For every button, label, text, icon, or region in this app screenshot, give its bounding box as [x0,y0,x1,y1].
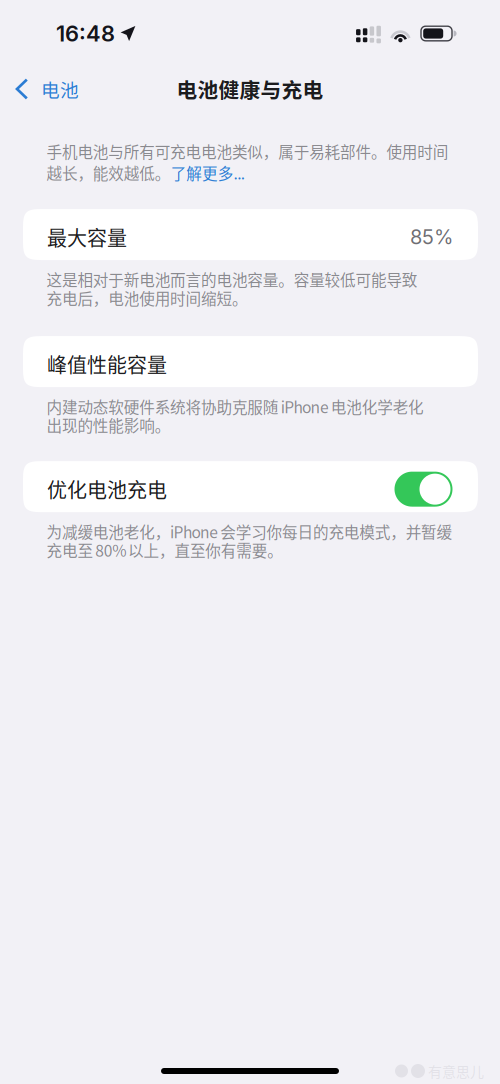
staticText: 电池 [41,75,79,102]
staticText: 最大容量 [47,223,127,252]
staticText: 手机电池与所有可充电电池类似，属于易耗部件。使用时间 [46,142,449,160]
button[interactable]: 峰值性能容量 [23,336,478,387]
button[interactable]: 电池 [0,67,91,110]
button[interactable]: 最大容量 [23,209,478,260]
staticText: 内建动态软硬件系统将协助克服随 iPhone 电池化学老化 出现的性能影响。 [46,397,424,434]
staticText: 为减缓电池老化，iPhone 会学习你每日的充电模式，并暂缓 充电至 80% 以… [46,522,453,559]
staticText: 这是相对于新电池而言的电池容量。容量较低可能导致 充电后，电池使用时间缩短。 [46,270,418,307]
button[interactable]: 了解更多... [171,163,245,182]
staticText: 16:48 [56,20,115,47]
staticText: 优化电池充电 [47,475,167,504]
staticText: 越长，能效越低。 [46,163,171,182]
staticText: 电池健康与充电 [176,74,323,104]
button[interactable]: 优化电池充电 [23,461,478,512]
staticText: 峰值性能容量 [47,350,167,379]
staticText: 85% [410,225,453,249]
staticText: 有意思儿 [428,1061,484,1081]
staticText: 了解更多... [171,163,245,182]
